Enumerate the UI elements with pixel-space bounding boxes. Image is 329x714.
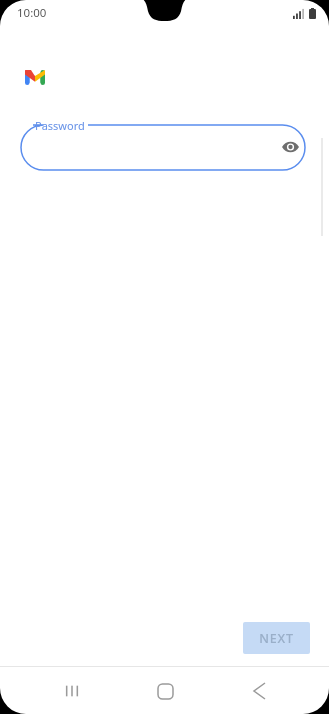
staticText: 10:00 — [17, 5, 47, 21]
button[interactable]: Recent apps — [50, 669, 94, 713]
button[interactable]: Home — [143, 669, 187, 713]
button[interactable]: NEXT — [243, 622, 310, 654]
button[interactable]: Password — [0, 116, 329, 172]
button[interactable]: Back — [237, 669, 281, 713]
button[interactable]: Show password — [278, 135, 302, 159]
staticText: NEXT — [259, 630, 294, 647]
staticText: Password — [35, 118, 85, 133]
